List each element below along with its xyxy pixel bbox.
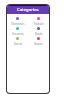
- button[interactable]: Beauty: [28, 35, 49, 45]
- staticText: Electronics: [11, 22, 25, 25]
- staticText: Groceries: [12, 32, 24, 35]
- button[interactable]: Electronics: [7, 15, 28, 25]
- staticText: Books: [35, 32, 43, 35]
- staticText: Beauty: [34, 42, 43, 45]
- button[interactable]: Groceries: [7, 25, 28, 35]
- button[interactable]: Fashion: [28, 15, 49, 25]
- button[interactable]: Books: [28, 25, 49, 35]
- staticText: Categories: [17, 7, 39, 13]
- button[interactable]: Sports: [7, 35, 28, 45]
- staticText: Sports: [14, 42, 22, 45]
- staticText: Fashion: [34, 22, 44, 25]
